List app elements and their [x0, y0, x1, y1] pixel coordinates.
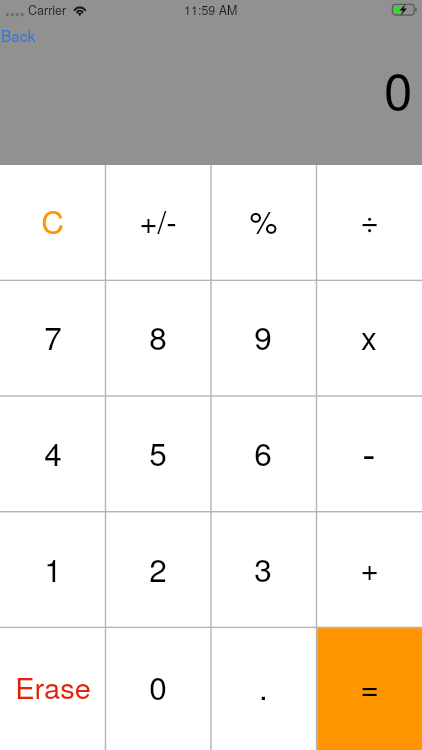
button[interactable]: 0 [105, 629, 210, 750]
staticText: 11:59 AM [184, 1, 238, 19]
button[interactable]: 3 [210, 513, 316, 629]
button[interactable]: = [316, 629, 422, 750]
button[interactable]: 1 [0, 513, 105, 629]
staticText: 9 [254, 314, 272, 359]
staticText: + [360, 544, 379, 590]
button[interactable]: Erase [0, 629, 105, 750]
staticText: 1 [44, 546, 62, 591]
button[interactable]: + [316, 513, 422, 629]
staticText: Erase [15, 666, 91, 708]
button[interactable]: 2 [105, 513, 210, 629]
button[interactable]: +/- [105, 165, 210, 281]
button[interactable]: 6 [210, 397, 316, 513]
staticText: x [361, 314, 377, 359]
staticText: +/- [139, 198, 177, 243]
button[interactable]: % [210, 165, 316, 281]
staticText: Back [1, 24, 36, 46]
staticText: % [249, 198, 278, 243]
staticText: 8 [149, 314, 167, 359]
button[interactable]: ÷ [316, 165, 422, 281]
other: Wi-Fi [72, 3, 90, 17]
staticText: - [362, 423, 376, 480]
staticText: 0 [384, 51, 413, 124]
staticText: 5 [149, 430, 167, 475]
staticText: 7 [44, 314, 62, 359]
staticText: C [41, 198, 64, 243]
button[interactable]: x [316, 281, 422, 397]
staticText: 0 [149, 664, 167, 709]
button[interactable]: . [210, 629, 316, 750]
staticText: 4 [44, 430, 62, 475]
other: Signal strength [6, 13, 24, 17]
staticText: 2 [149, 546, 167, 591]
staticText: 3 [254, 546, 272, 591]
staticText: = [360, 663, 379, 709]
staticText: ÷ [360, 196, 379, 242]
button[interactable]: C [0, 165, 105, 281]
staticText: 6 [254, 430, 272, 475]
button[interactable]: 4 [0, 397, 105, 513]
button[interactable]: 7 [0, 281, 105, 397]
button[interactable]: 5 [105, 397, 210, 513]
button[interactable]: Back [0, 22, 44, 51]
staticText: Carrier [28, 1, 67, 19]
button[interactable]: 9 [210, 281, 316, 397]
staticText: . [259, 664, 268, 709]
button[interactable]: - [316, 397, 422, 513]
other: Battery charging [390, 3, 420, 17]
button[interactable]: 8 [105, 281, 210, 397]
